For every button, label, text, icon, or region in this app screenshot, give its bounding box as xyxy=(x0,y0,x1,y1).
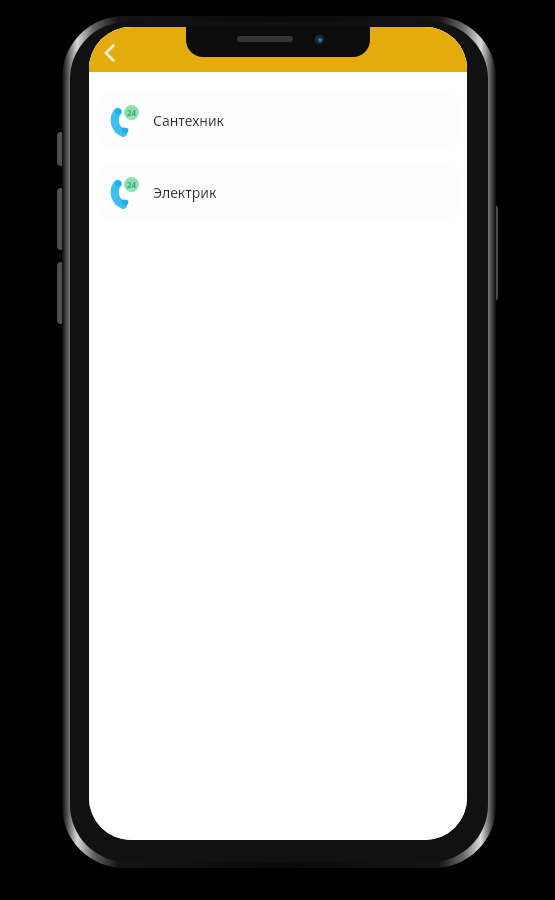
staticText: 24 xyxy=(127,179,137,190)
button[interactable]: 24 xyxy=(97,166,459,218)
staticText: 24 xyxy=(127,107,137,118)
button[interactable]: Back xyxy=(91,34,129,72)
staticText: Сантехник xyxy=(153,111,225,130)
button[interactable]: 24 xyxy=(97,94,459,146)
staticText: Электрик xyxy=(153,183,217,202)
